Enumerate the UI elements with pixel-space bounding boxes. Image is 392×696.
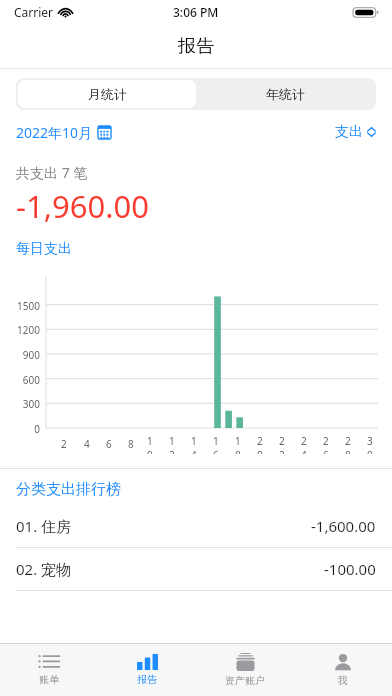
button[interactable]: 报告: [98, 644, 196, 696]
staticText: 2: [61, 437, 67, 451]
button[interactable]: 支出: [335, 123, 376, 141]
staticText: 0: [6, 422, 40, 436]
button[interactable]: 月统计: [18, 80, 196, 108]
staticText: 1200: [6, 323, 40, 337]
staticText: 我: [338, 674, 348, 687]
staticText: 300: [6, 397, 40, 411]
staticText: 600: [6, 373, 40, 387]
staticText: -100.00: [324, 559, 376, 579]
staticText: 02. 宠物: [16, 559, 72, 579]
staticText: 报告: [178, 35, 214, 58]
staticText: 26: [323, 434, 334, 454]
other: 报告: [137, 654, 158, 670]
other: 账单: [38, 654, 60, 670]
staticText: 报告: [137, 673, 157, 686]
staticText: 共支出 7 笔: [16, 163, 88, 182]
staticText: 14: [191, 434, 202, 454]
staticText: 账单: [39, 673, 59, 686]
staticText: 资产账户: [225, 674, 265, 687]
staticText: 分类支出排行榜: [16, 480, 121, 499]
staticText: -1,960.00: [16, 185, 149, 227]
staticText: 3:06 PM: [173, 4, 219, 20]
staticText: 20: [257, 434, 268, 454]
button[interactable]: 年统计: [196, 80, 374, 108]
staticText: 16: [213, 434, 224, 454]
staticText: 28: [345, 434, 356, 454]
staticText: 900: [6, 348, 40, 362]
button[interactable]: 02. 宠物: [0, 548, 392, 590]
other: 我: [333, 654, 353, 671]
staticText: 10: [147, 434, 158, 454]
button[interactable]: 我: [294, 644, 392, 696]
staticText: 12: [169, 434, 180, 454]
staticText: 01. 住房: [16, 516, 72, 536]
staticText: 6: [106, 437, 112, 451]
staticText: 年统计: [266, 86, 305, 102]
staticText: 18: [235, 434, 246, 454]
other: 资产账户: [235, 653, 256, 671]
staticText: 月统计: [88, 86, 127, 102]
staticText: -1,600.00: [311, 516, 376, 536]
button[interactable]: 账单: [0, 644, 98, 696]
staticText: 每日支出: [16, 240, 72, 258]
staticText: 支出: [335, 123, 363, 141]
button[interactable]: 资产账户: [196, 644, 294, 696]
staticText: 24: [301, 434, 312, 454]
staticText: 8: [128, 437, 134, 451]
button[interactable]: 2022年10月: [16, 123, 111, 142]
staticText: 4: [84, 437, 90, 451]
staticText: 2022年10月: [16, 123, 93, 142]
staticText: 1500: [6, 299, 40, 313]
staticText: Carrier: [14, 4, 54, 20]
staticText: 30: [367, 434, 378, 454]
staticText: 22: [279, 434, 290, 454]
button[interactable]: 01. 住房: [0, 505, 392, 547]
